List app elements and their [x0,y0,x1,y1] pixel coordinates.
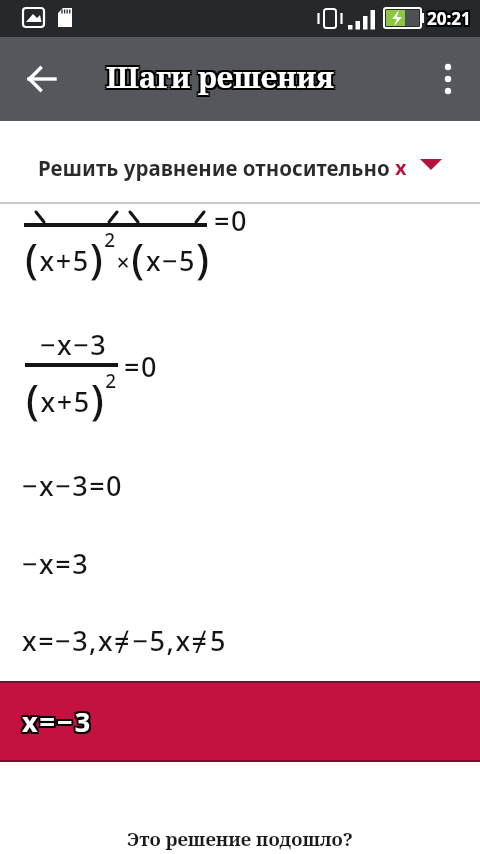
staticText: Шаги решения [104,59,332,98]
button[interactable] [14,51,70,107]
staticText: x=−3 [22,701,93,738]
staticText: −x−3 [40,326,108,363]
staticText: 20:21 [427,9,471,32]
staticText: x=−3 [20,705,91,742]
staticText: −x−3=0 [22,467,124,504]
staticText: Решить уравнение относительно [38,154,395,182]
staticText: x=−3 [20,703,91,740]
staticText: Шаги решения [106,55,334,94]
staticText: (x+5)2 [26,368,118,428]
staticText: Шаги решения [108,57,336,96]
staticText: 20:21 [429,5,473,28]
staticText: −x=3 [22,545,90,582]
staticText: 20:21 [429,7,473,30]
staticText: 20:21 [425,9,469,32]
button[interactable] [424,55,472,103]
staticText: x=−3 [24,703,95,740]
staticText: =0 [124,348,158,385]
staticText: Это решение подошло? [127,826,353,851]
staticText: Шаги решения [106,57,334,96]
button[interactable]: x=−3 [0,681,480,762]
staticText: Шаги решения [108,55,336,94]
staticText: Шаги решения [106,59,334,98]
staticText: x=−3 [24,705,95,742]
staticText: 20:21 [427,5,471,28]
staticText: x=−3 [24,701,95,738]
staticText: Шаги решения [104,55,332,94]
staticText: Шаги решения [108,59,336,98]
staticText: Шаги решения [104,57,332,96]
staticText: x [395,154,407,181]
staticText: 20:21 [425,7,469,30]
staticText: (x+5)2×(x−5) [25,227,211,287]
staticText: 20:21 [425,5,469,28]
staticText: x=−3 [22,703,93,740]
staticText: =0 [214,202,248,239]
staticText: 20:21 [429,9,473,32]
button[interactable]: Решить уравнение относительно [0,135,480,200]
staticText: x=−3,x≠−5,x≠5 [22,622,227,659]
staticText: 20:21 [427,7,471,30]
staticText: x=−3 [20,701,91,738]
staticText: x=−3 [22,705,93,742]
